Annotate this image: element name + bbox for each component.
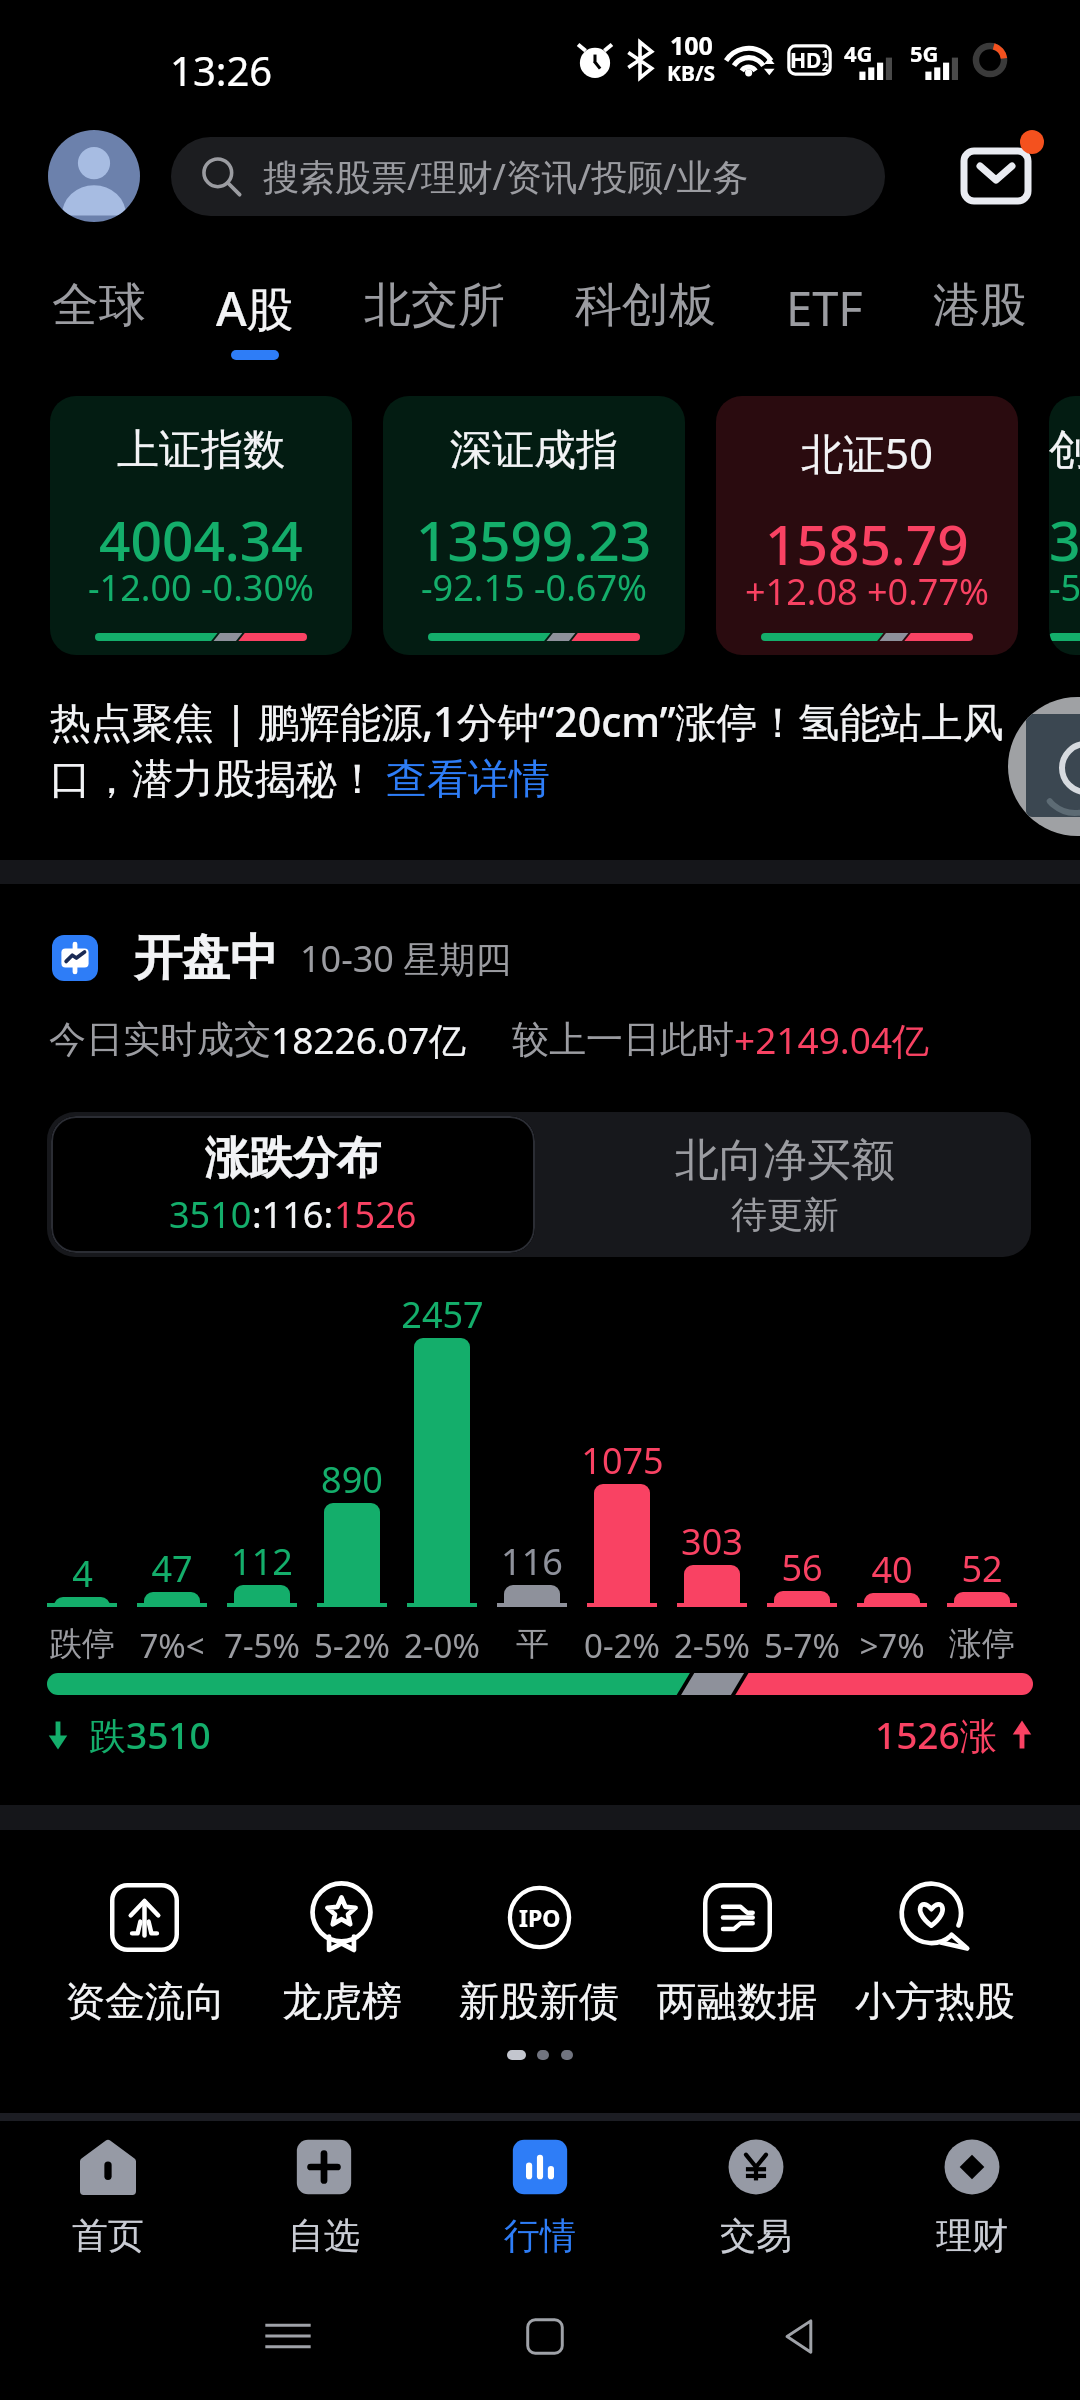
staticText: 52 bbox=[961, 1544, 1003, 1593]
button[interactable]: 热点聚焦 | 鹏辉能源,1分钟“20cm”涨停！氢能站上风 bbox=[50, 693, 1080, 806]
staticText: 涨跌分布 bbox=[205, 1131, 381, 1186]
staticText: 1526 bbox=[334, 1190, 417, 1239]
button[interactable]: Messages bbox=[952, 124, 1048, 216]
staticText: A股 bbox=[216, 276, 294, 340]
button[interactable]: 港股 bbox=[933, 276, 1027, 355]
button[interactable]: 自选 bbox=[216, 2120, 432, 2270]
staticText: KB/S bbox=[667, 59, 716, 88]
staticText: +12.08 +0.77% bbox=[745, 567, 989, 616]
button[interactable]: 深证成指 bbox=[383, 396, 685, 655]
staticText: 搜索股票/理财/资讯/投顾/业务 bbox=[263, 152, 749, 201]
staticText: 56 bbox=[781, 1543, 823, 1592]
button[interactable]: A股 bbox=[216, 276, 364, 360]
staticText: 涨停 bbox=[949, 1623, 1015, 1665]
button[interactable]: IPO bbox=[440, 1883, 638, 2026]
staticText: 5G bbox=[910, 38, 939, 68]
staticText: 今日实时成交 bbox=[49, 1016, 271, 1063]
staticText: 平 bbox=[516, 1623, 549, 1665]
staticText: 北向净买额 bbox=[675, 1133, 895, 1188]
button[interactable]: 北交所 bbox=[364, 276, 575, 355]
staticText: 2-5% bbox=[674, 1623, 750, 1668]
button[interactable]: 理财 bbox=[864, 2120, 1080, 2270]
button[interactable]: 交易 bbox=[648, 2120, 864, 2270]
staticText: 4 bbox=[72, 1549, 93, 1598]
staticText: -5.20 -0.16% bbox=[1049, 563, 1080, 612]
staticText: 北证50 bbox=[801, 424, 934, 481]
staticText: 116 bbox=[501, 1537, 563, 1586]
staticText: ETF bbox=[786, 276, 863, 340]
staticText: 5-2% bbox=[314, 1623, 390, 1668]
staticText: 13599.23 bbox=[416, 502, 652, 577]
staticText: 18226.07亿 bbox=[271, 1014, 467, 1065]
staticText: 1585.79 bbox=[765, 506, 969, 581]
staticText: 100 bbox=[670, 28, 713, 62]
staticText: HD bbox=[790, 46, 822, 75]
staticText: 47 bbox=[151, 1544, 193, 1593]
staticText: 10-30 星期四 bbox=[300, 934, 512, 983]
staticText: 小方热股 bbox=[855, 1976, 1015, 2026]
staticText: 跌3510 bbox=[89, 1709, 211, 1760]
button[interactable]: 小方热股 bbox=[836, 1883, 1034, 2026]
staticText: 890 bbox=[321, 1455, 383, 1504]
staticText: 交易 bbox=[720, 2213, 792, 2258]
staticText: 303 bbox=[681, 1517, 743, 1566]
staticText: 热点聚焦 | 鹏辉能源,1分钟“20cm”涨停！氢能站上风 bbox=[50, 693, 1004, 749]
staticText: 全球 bbox=[52, 276, 146, 335]
staticText: 3200.11 bbox=[1049, 502, 1080, 577]
button[interactable]: Profile bbox=[48, 130, 140, 222]
staticText: 新股新债 bbox=[459, 1976, 619, 2026]
staticText: 1075 bbox=[581, 1436, 664, 1485]
button[interactable]: Quick search bbox=[1008, 697, 1080, 836]
staticText: 2-0% bbox=[404, 1623, 480, 1668]
staticText: 1526涨 bbox=[875, 1709, 997, 1760]
button[interactable]: 搜索股票/理财/资讯/投顾/业务 bbox=[171, 137, 885, 216]
staticText: :116: bbox=[252, 1190, 334, 1239]
button[interactable]: 科创板 bbox=[575, 276, 786, 355]
staticText: 自选 bbox=[288, 2213, 360, 2258]
staticText: 龙虎榜 bbox=[282, 1976, 402, 2026]
staticText: 港股 bbox=[933, 276, 1027, 335]
staticText: 两融数据 bbox=[657, 1976, 817, 2026]
staticText: 13:26 bbox=[170, 43, 273, 97]
button[interactable]: 两融数据 bbox=[638, 1883, 836, 2026]
staticText: 资金流向 bbox=[65, 1976, 225, 2026]
staticText: 较上一日此时 bbox=[512, 1016, 734, 1063]
staticText: 口，潜力股揭秘！ bbox=[50, 754, 378, 806]
staticText: 科创板 bbox=[575, 276, 716, 335]
button[interactable]: 涨跌分布 bbox=[51, 1116, 535, 1253]
staticText: 开盘中 bbox=[134, 928, 278, 988]
staticText: 2 bbox=[822, 59, 829, 74]
staticText: 创业板指 bbox=[1049, 424, 1080, 477]
staticText: >7% bbox=[859, 1623, 925, 1668]
staticText: 查看详情 bbox=[386, 754, 550, 806]
staticText: IPO bbox=[519, 1902, 561, 1933]
button[interactable]: 上证指数 bbox=[50, 396, 352, 655]
staticText: 深证成指 bbox=[450, 424, 618, 477]
staticText: 3510 bbox=[169, 1190, 252, 1239]
button[interactable]: 行情 bbox=[432, 2120, 648, 2270]
button[interactable]: 北证50 bbox=[716, 396, 1018, 655]
staticText: 5-7% bbox=[764, 1623, 840, 1668]
staticText: 理财 bbox=[936, 2213, 1008, 2258]
staticText: 40 bbox=[871, 1545, 913, 1594]
staticText: 待更新 bbox=[731, 1192, 839, 1237]
staticText: -92.15 -0.67% bbox=[421, 563, 647, 612]
button[interactable]: 全球 bbox=[52, 276, 216, 355]
staticText: 1 bbox=[822, 46, 829, 61]
button[interactable]: ETF bbox=[786, 276, 933, 360]
staticText: 北交所 bbox=[364, 276, 505, 335]
staticText: 跌停 bbox=[49, 1623, 115, 1665]
staticText: 7%< bbox=[139, 1623, 205, 1668]
button[interactable]: 龙虎榜 bbox=[243, 1883, 440, 2026]
staticText: 112 bbox=[231, 1537, 293, 1586]
button[interactable]: 北向净买额 bbox=[539, 1112, 1031, 1257]
staticText: 2457 bbox=[401, 1290, 484, 1339]
staticText: 4004.34 bbox=[99, 502, 303, 577]
button[interactable]: 创业板指 bbox=[1049, 396, 1080, 655]
staticText: +2149.04亿 bbox=[734, 1014, 930, 1065]
staticText: 7-5% bbox=[224, 1623, 300, 1668]
staticText: 行情 bbox=[504, 2213, 576, 2258]
button[interactable]: 首页 bbox=[0, 2120, 216, 2270]
button[interactable]: 资金流向 bbox=[46, 1883, 243, 2026]
staticText: -12.00 -0.30% bbox=[88, 563, 314, 612]
